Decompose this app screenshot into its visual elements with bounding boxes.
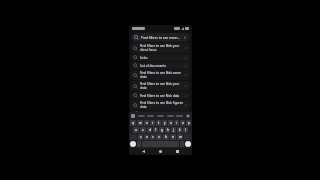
staticText: j (173, 128, 174, 132)
other: Insert suggestion (184, 46, 188, 50)
button[interactable] (147, 115, 154, 117)
button[interactable]: c (150, 134, 155, 140)
button[interactable]: x (144, 134, 149, 140)
staticText: w (139, 121, 142, 125)
staticText: b (165, 135, 167, 139)
button[interactable]: n (170, 134, 176, 140)
staticText: m (179, 135, 182, 139)
other: Insert suggestion (184, 84, 188, 88)
button[interactable]: Recent apps (175, 149, 180, 154)
staticText: data (140, 86, 147, 90)
staticText: t (158, 121, 160, 125)
button[interactable] (176, 115, 183, 117)
button[interactable]: o (180, 120, 185, 126)
button[interactable]: l (183, 127, 188, 133)
staticText: k (179, 128, 181, 132)
other: Insert suggestion (184, 56, 188, 60)
staticText: l (185, 128, 186, 132)
staticText: data (140, 75, 147, 79)
staticText: c (152, 135, 154, 139)
staticText: u (170, 121, 172, 125)
button[interactable]: Find filters to see Nick figures (131, 100, 190, 110)
button[interactable]: r (150, 120, 155, 126)
button[interactable]: Find filters to see Nick your (131, 81, 190, 91)
button[interactable]: f (153, 127, 158, 133)
staticText: v (158, 135, 160, 139)
button[interactable]: Find filters to see Nick your (131, 43, 190, 53)
button[interactable]: Home (158, 149, 163, 154)
staticText: Find filters to see member data (141, 35, 182, 40)
button[interactable]: v (156, 134, 162, 140)
button[interactable]: s (140, 127, 146, 133)
button[interactable]: q (130, 120, 136, 126)
button[interactable]: b (163, 134, 169, 140)
button[interactable]: w (137, 120, 143, 126)
staticText: client focus (140, 48, 157, 52)
button[interactable]: Emoji (131, 114, 135, 118)
button[interactable] (157, 115, 164, 117)
button[interactable]: m (177, 134, 183, 140)
button[interactable]: List of documents (131, 62, 190, 69)
staticText: g (161, 128, 163, 132)
staticText: Find filters to see Nick same (140, 71, 181, 75)
other: Insert suggestion (184, 103, 188, 107)
button[interactable]: j (171, 127, 176, 133)
button[interactable]: t (156, 120, 161, 126)
staticText: r (152, 121, 154, 125)
other: Insert suggestion (184, 94, 188, 98)
button[interactable]: e (144, 120, 149, 126)
staticText: q (132, 121, 134, 125)
button[interactable]: Links (131, 54, 190, 61)
staticText: Links (140, 56, 148, 60)
button[interactable]: y (162, 120, 167, 126)
button[interactable]: k (177, 127, 182, 133)
other: Insert suggestion (184, 73, 188, 77)
button[interactable]: i (174, 120, 179, 126)
button[interactable]: Enter (185, 141, 191, 147)
button[interactable]: Search (131, 33, 190, 42)
button[interactable]: Symbols (130, 141, 136, 147)
staticText: Find filters to see Nick your (140, 82, 180, 86)
staticText: f (155, 128, 157, 132)
button[interactable]: Nick the Nick to see Nick the (131, 111, 190, 112)
staticText: a (135, 128, 137, 132)
button[interactable]: Find filters to see Nick same (131, 70, 190, 80)
button[interactable]: More options (186, 114, 190, 118)
button[interactable]: p (186, 120, 191, 126)
button[interactable]: g (159, 127, 164, 133)
staticText: List of documents (140, 64, 166, 68)
button[interactable]: a (133, 127, 139, 133)
button[interactable]: u (168, 120, 173, 126)
other: Voice search (183, 36, 187, 40)
staticText: y (164, 121, 166, 125)
button[interactable]: Find filters to see Nick data (131, 92, 190, 99)
staticText: x (146, 135, 148, 139)
button[interactable] (138, 115, 145, 117)
staticText: n (172, 135, 174, 139)
other: Search (134, 35, 139, 40)
staticText: p (188, 121, 190, 125)
button[interactable]: d (147, 127, 152, 133)
staticText: data (140, 105, 147, 109)
other: Insert suggestion (184, 64, 188, 68)
staticText: Find filters to see Nick data (140, 94, 180, 98)
staticText: z (140, 135, 142, 139)
staticText: s (142, 128, 144, 132)
staticText: i (176, 121, 177, 125)
button[interactable]: z (138, 134, 143, 140)
staticText: h (167, 128, 169, 132)
staticText: Find filters to see Nick figures (140, 101, 183, 105)
button[interactable]: Back (141, 149, 146, 154)
button[interactable]: h (165, 127, 170, 133)
staticText: o (182, 121, 184, 125)
staticText: Find filters to see Nick your (140, 44, 180, 48)
staticText: e (146, 121, 148, 125)
staticText: d (149, 128, 151, 132)
button[interactable] (167, 115, 174, 117)
